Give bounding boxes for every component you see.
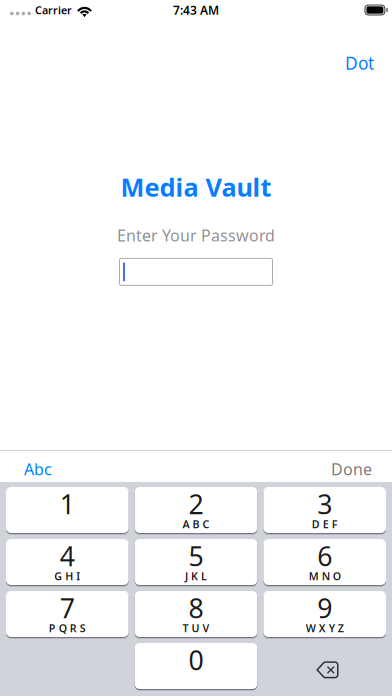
button[interactable]: Abc: [0, 447, 66, 486]
button[interactable]: 9: [263, 591, 386, 637]
staticText: 7: [60, 590, 75, 626]
staticText: D E F: [312, 517, 338, 531]
staticText: 6: [317, 538, 332, 574]
staticText: 4: [60, 538, 75, 574]
staticText: 0: [188, 642, 203, 678]
button[interactable]: 1: [6, 487, 129, 533]
staticText: Abc: [24, 458, 52, 480]
button[interactable]: 2: [135, 487, 257, 533]
button[interactable]: 0: [135, 643, 257, 689]
staticText: 9: [317, 590, 332, 626]
button[interactable]: 6: [263, 539, 386, 585]
staticText: Enter Your Password: [117, 225, 275, 246]
button[interactable]: 8: [135, 591, 257, 637]
button[interactable]: 4: [6, 539, 129, 585]
staticText: P Q R S: [49, 621, 86, 635]
staticText: 8: [188, 590, 203, 626]
staticText: 2: [188, 486, 203, 522]
staticText: Media Vault: [120, 170, 271, 204]
staticText: J K L: [185, 569, 207, 583]
staticText: 5: [188, 538, 203, 574]
staticText: Done: [331, 458, 372, 480]
staticText: W X Y Z: [306, 621, 344, 635]
staticText: A B C: [182, 517, 209, 531]
button[interactable]: 3: [263, 487, 386, 533]
staticText: 1: [60, 486, 75, 522]
button[interactable]: Dot: [329, 41, 390, 84]
button[interactable]: Done: [317, 447, 392, 486]
button[interactable]: Delete: [263, 643, 386, 689]
staticText: 7:43 AM: [173, 2, 219, 18]
staticText: G H I: [54, 569, 80, 583]
button[interactable]: 5: [135, 539, 257, 585]
staticText: T U V: [182, 621, 209, 635]
staticText: 3: [317, 486, 332, 522]
staticText: Carrier: [35, 3, 72, 17]
button[interactable]: 7: [6, 591, 129, 637]
staticText: Dot: [345, 51, 374, 74]
staticText: M N O: [309, 569, 341, 583]
